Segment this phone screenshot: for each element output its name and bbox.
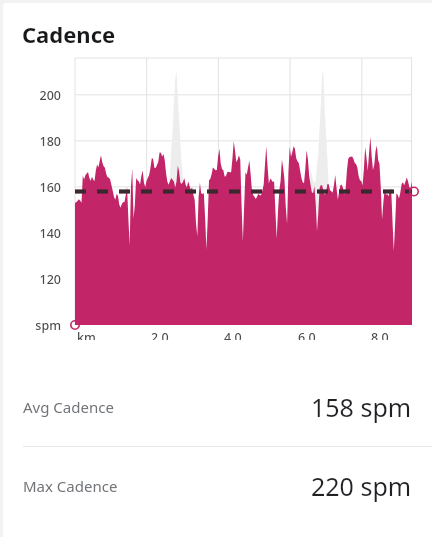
staticText: 220 spm [311,469,412,503]
staticText: Avg Cadence [23,397,114,417]
button[interactable]: Avg Cadence [3,368,432,446]
staticText: Max Cadence [23,476,118,496]
staticText: 4.0 [224,329,242,340]
staticText: km [77,329,96,340]
staticText: 120 [3,271,61,288]
staticText: 180 [3,133,61,150]
staticText: 2.0 [151,329,169,340]
staticText: 160 [3,179,61,196]
staticText: 158 spm [311,390,412,424]
staticText: 140 [3,225,61,242]
staticText: Cadence [22,19,116,49]
staticText: 8.0 [371,329,389,340]
button[interactable]: Max Cadence [3,447,432,525]
staticText: 200 [3,87,61,104]
staticText: spm [3,317,61,334]
staticText: 6.0 [298,329,316,340]
